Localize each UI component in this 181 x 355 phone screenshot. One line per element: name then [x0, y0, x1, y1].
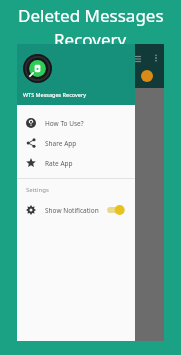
button[interactable]: More options: [150, 52, 162, 64]
staticText: Share App: [45, 139, 77, 148]
button[interactable]: Share App: [17, 133, 135, 153]
staticText: WTS Messages Recovery: [23, 91, 86, 98]
button[interactable]: Action button: [141, 70, 153, 82]
staticText: Deleted Messages: [18, 4, 164, 27]
button[interactable]: Show Notification: [17, 200, 135, 220]
staticText: How To Use?: [45, 119, 84, 128]
button[interactable]: Rate App: [17, 153, 135, 173]
staticText: Show Notification: [45, 206, 99, 215]
button[interactable]: Menu: [129, 52, 143, 66]
button[interactable]: How To Use?: [17, 113, 135, 133]
staticText: Recovery: [54, 28, 127, 51]
staticText: Rate App: [45, 159, 73, 168]
button[interactable]: WTS Messages Recovery: [17, 44, 135, 105]
staticText: Settings: [26, 186, 49, 194]
